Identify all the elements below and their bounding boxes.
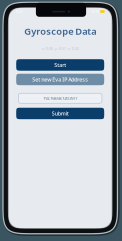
- button[interactable]: Submit: [16, 108, 104, 119]
- staticText: Gyroscope Data: [24, 25, 96, 37]
- staticText: Set new Eva IP Address: [32, 76, 88, 83]
- button[interactable]: 192.168.68.120:3977: [18, 93, 102, 103]
- staticText: x: 0.00 y: 0.01 z: 0.02: [42, 46, 79, 51]
- staticText: Submit: [52, 110, 69, 117]
- button[interactable]: Start: [16, 59, 104, 71]
- staticText: 192.168.68.120:3977: [43, 95, 77, 101]
- button[interactable]: Set new Eva IP Address: [16, 74, 104, 85]
- staticText: Start: [54, 61, 66, 68]
